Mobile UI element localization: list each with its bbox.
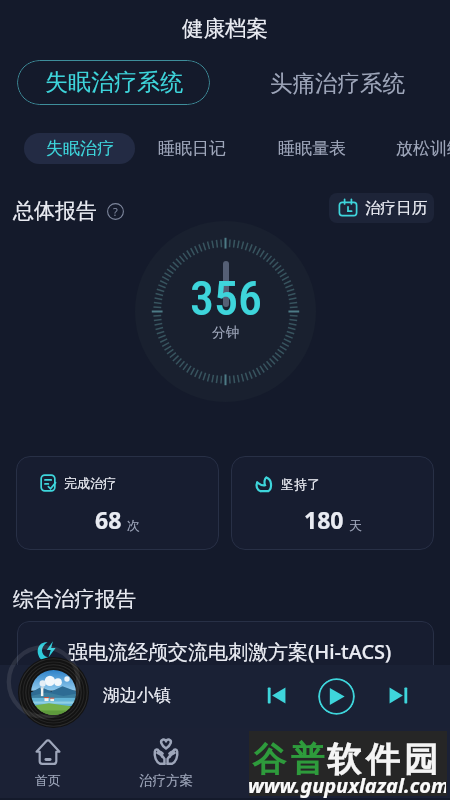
staticText: 失眠治疗系统: [45, 68, 183, 97]
staticText: 谷普: [250, 738, 327, 781]
staticText: ?: [113, 204, 118, 219]
staticText: 分钟: [212, 324, 239, 341]
button[interactable]: 治疗方案: [123, 728, 208, 798]
button[interactable]: 治疗日历: [329, 193, 434, 223]
button[interactable]: 强电流经颅交流电刺激方案(Hi-tACS): [17, 621, 434, 711]
staticText: 失眠治疗: [46, 138, 114, 159]
staticText: 综合治疗报告: [13, 586, 136, 612]
staticText: 完成治疗: [64, 475, 116, 491]
button[interactable]: 完成治疗: [16, 456, 219, 550]
staticText: 湖边小镇: [103, 685, 171, 706]
button[interactable]: 头痛治疗系统: [263, 60, 411, 105]
staticText: www.gupuxlazal.com: [248, 772, 446, 799]
staticText: 软件园: [327, 738, 443, 781]
staticText: 356: [190, 270, 262, 324]
button[interactable]: 睡眠量表: [272, 133, 352, 164]
staticText: 健康档案: [182, 15, 268, 42]
button[interactable]: 首页: [13, 728, 83, 798]
staticText: 治疗方案: [139, 772, 193, 789]
staticText: 天: [349, 517, 362, 533]
button[interactable]: Help: [107, 203, 124, 220]
staticText: 首页: [35, 772, 61, 788]
button[interactable]: 坚持了: [231, 456, 434, 550]
staticText: 坚持了: [281, 476, 320, 492]
button[interactable]: Previous: [267, 686, 286, 705]
staticText: 头痛治疗系统: [270, 69, 405, 97]
button[interactable]: 睡眠日记: [152, 133, 232, 164]
staticText: 睡眠量表: [278, 138, 346, 159]
button[interactable]: Play: [318, 678, 355, 715]
button[interactable]: 失眠治疗系统: [17, 60, 210, 105]
staticText: 睡眠日记: [158, 138, 226, 159]
staticText: 强电流经颅交流电刺激方案(Hi-tACS): [68, 638, 392, 665]
button[interactable]: Next: [389, 686, 408, 705]
staticText: 68: [95, 504, 122, 535]
staticText: 180: [304, 504, 344, 535]
staticText: 放松训练: [396, 138, 450, 159]
staticText: 治疗日历: [365, 198, 427, 218]
staticText: 次: [127, 517, 140, 533]
button[interactable]: 放松训练: [390, 133, 450, 164]
staticText: 总体报告: [13, 198, 97, 224]
button[interactable]: 失眠治疗: [24, 133, 135, 164]
